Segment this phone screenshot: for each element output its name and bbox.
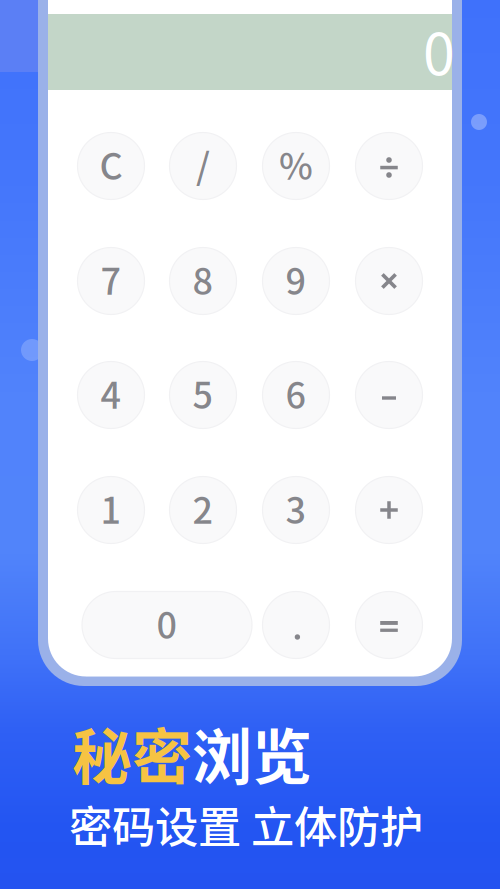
staticText: 0 bbox=[423, 8, 455, 91]
button[interactable]: 9 bbox=[262, 247, 329, 314]
staticText: 0 bbox=[156, 597, 177, 649]
staticText: / bbox=[196, 138, 210, 190]
button[interactable]: 6 bbox=[262, 361, 329, 428]
staticText: 9 bbox=[285, 253, 306, 305]
staticText: 8 bbox=[192, 253, 213, 305]
button[interactable]: 4 bbox=[77, 361, 144, 428]
button[interactable]: Divide slash bbox=[169, 132, 236, 199]
button[interactable]: 2 bbox=[169, 476, 236, 543]
button[interactable]: Plus bbox=[355, 476, 422, 543]
staticText: 浏览 bbox=[192, 710, 312, 796]
staticText: 4 bbox=[100, 367, 121, 419]
button[interactable]: Multiply bbox=[355, 247, 422, 314]
staticText: % bbox=[279, 138, 313, 190]
button[interactable]: Clear bbox=[77, 132, 144, 199]
button[interactable]: 8 bbox=[169, 247, 236, 314]
button[interactable]: 1 bbox=[77, 476, 144, 543]
button[interactable]: Decimal point bbox=[262, 591, 329, 658]
button[interactable]: 0 bbox=[82, 591, 252, 658]
staticText: 5 bbox=[192, 367, 213, 419]
staticText: 6 bbox=[285, 367, 306, 419]
staticText: 3 bbox=[285, 482, 306, 534]
button[interactable]: Divide bbox=[355, 132, 422, 199]
button[interactable]: 3 bbox=[262, 476, 329, 543]
button[interactable]: 7 bbox=[77, 247, 144, 314]
staticText: C bbox=[99, 138, 122, 190]
button[interactable]: Percent bbox=[262, 132, 329, 199]
staticText: 1 bbox=[100, 482, 121, 534]
staticText: 密码设置 立体防护 bbox=[69, 793, 423, 855]
staticText: 7 bbox=[100, 253, 121, 305]
button[interactable]: Equals bbox=[355, 591, 422, 658]
staticText: 秘密 bbox=[72, 710, 192, 796]
button[interactable]: Minus bbox=[355, 361, 422, 428]
staticText: 2 bbox=[192, 482, 213, 534]
button[interactable]: 5 bbox=[169, 361, 236, 428]
